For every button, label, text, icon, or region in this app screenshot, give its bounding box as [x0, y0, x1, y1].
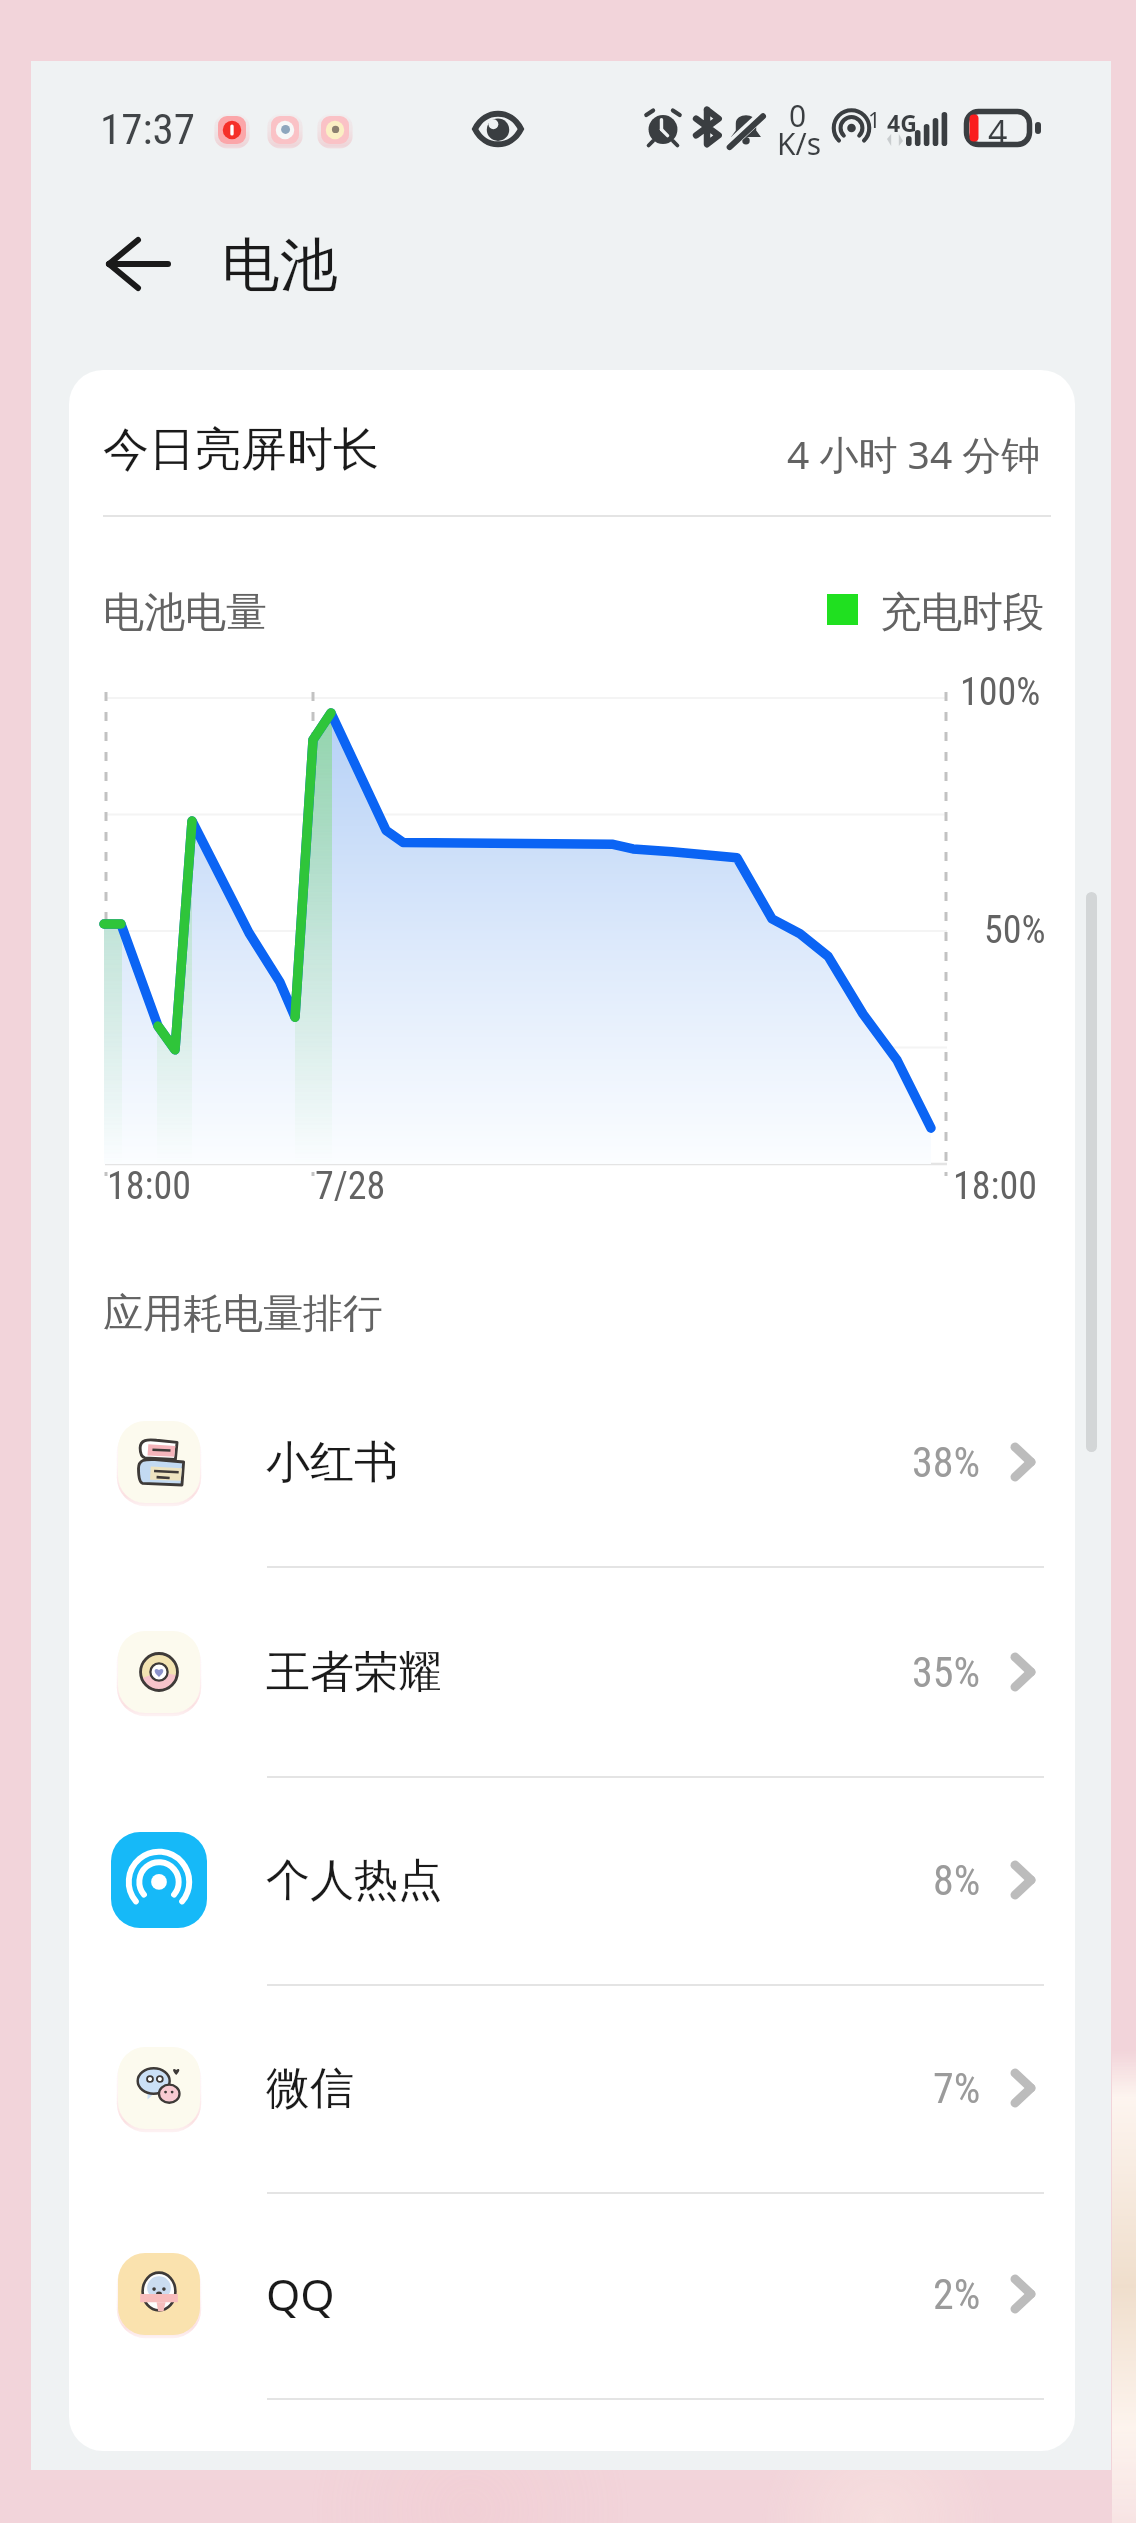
staticText: 充电时段 [880, 587, 1044, 639]
button[interactable]: 小红书 [69, 1358, 1075, 1566]
staticText: 电池 [222, 229, 338, 302]
staticText: K/s [777, 123, 822, 164]
staticText: 0 [789, 95, 807, 136]
staticText: 18:00 [107, 1164, 191, 1209]
staticText: 2% [933, 2270, 981, 2319]
staticText: 50% [984, 908, 1046, 953]
staticText: 7/28 [315, 1164, 386, 1209]
staticText: 应用耗电量排行 [103, 1288, 383, 1338]
staticText: 个人热点 [266, 1853, 442, 1908]
button[interactable]: Back [78, 204, 198, 324]
button[interactable]: 个人热点 [69, 1776, 1075, 1984]
staticText: 1 [868, 104, 881, 134]
staticText: 4 小时 34 分钟 [787, 427, 1041, 480]
staticText: 38% [912, 1438, 981, 1487]
button[interactable]: 王者荣耀 [69, 1568, 1075, 1776]
button[interactable]: QQ [69, 2190, 1075, 2398]
staticText: 7% [933, 2064, 981, 2113]
staticText: 电池电量 [103, 587, 267, 639]
staticText: QQ [266, 2264, 335, 2324]
staticText: 100% [960, 670, 1041, 715]
staticText: 微信 [266, 2061, 354, 2116]
staticText: 35% [912, 1648, 981, 1697]
staticText: 18:00 [953, 1164, 1037, 1209]
staticText: 17:37 [100, 104, 195, 154]
staticText: 8% [933, 1856, 981, 1905]
button[interactable]: 微信 [69, 1984, 1075, 2192]
staticText: 今日亮屏时长 [103, 421, 379, 479]
staticText: 小红书 [266, 1435, 398, 1490]
staticText: 王者荣耀 [266, 1645, 442, 1700]
staticText: 4 [988, 109, 1008, 155]
staticText: 4G [887, 107, 917, 138]
